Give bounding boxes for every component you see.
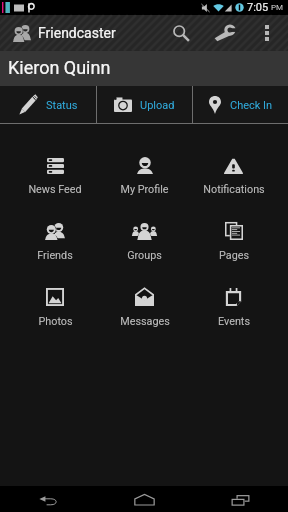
button[interactable]: Home	[96, 486, 192, 512]
button[interactable]: Pages	[189, 214, 278, 280]
staticText: Friendcaster	[38, 25, 116, 41]
staticText: Pages	[219, 249, 249, 262]
staticText: PM	[271, 3, 284, 12]
staticText: Status	[46, 99, 78, 112]
button[interactable]: Events	[189, 280, 278, 346]
staticText: Check In	[230, 99, 273, 112]
staticText: Upload	[140, 99, 175, 112]
staticText: Events	[218, 315, 250, 328]
button[interactable]: Friends	[10, 214, 100, 280]
button[interactable]: Search	[166, 15, 196, 51]
button[interactable]: Photos	[10, 280, 100, 346]
staticText: News Feed	[28, 183, 82, 196]
staticText: Photos	[38, 315, 73, 328]
staticText: Kieron Quinn	[8, 57, 111, 78]
button[interactable]: My Profile	[100, 148, 189, 214]
button[interactable]: Messages	[100, 280, 189, 346]
button[interactable]: Recents	[192, 486, 288, 512]
button[interactable]: Groups	[100, 214, 189, 280]
button[interactable]: News Feed	[10, 148, 100, 214]
staticText: My Profile	[120, 183, 169, 196]
button[interactable]: Check In	[193, 86, 288, 123]
staticText: 7:05	[247, 1, 269, 14]
staticText: Notifications	[203, 183, 265, 196]
button[interactable]: Status	[0, 86, 96, 123]
staticText: Groups	[127, 249, 162, 262]
button[interactable]: Settings	[196, 15, 252, 51]
staticText: Friends	[37, 249, 73, 262]
button[interactable]: Upload	[97, 86, 192, 123]
button[interactable]: Notifications	[189, 148, 278, 214]
button[interactable]: Back	[0, 486, 96, 512]
button[interactable]: More options	[252, 15, 282, 51]
staticText: Messages	[120, 315, 170, 328]
